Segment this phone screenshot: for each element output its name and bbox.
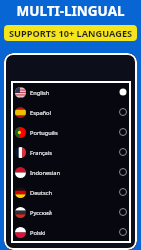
button[interactable]: Indonesian: [11, 162, 131, 182]
staticText: English: [30, 89, 50, 97]
staticText: Deutsch: [30, 189, 52, 197]
staticText: MULTI-LINGUAL: [0, 2, 141, 20]
staticText: Русский: [30, 209, 52, 217]
button[interactable]: Русский: [11, 202, 131, 222]
button[interactable]: Polski: [11, 222, 131, 242]
staticText: Indonesian: [30, 169, 61, 177]
button[interactable]: English: [11, 82, 131, 102]
staticText: Español: [30, 109, 51, 117]
staticText: SUPPORTS 10+ LANGUAGES: [9, 27, 133, 40]
staticText: Français: [30, 149, 53, 157]
button[interactable]: Español: [11, 102, 131, 122]
staticText: Polski: [30, 229, 46, 237]
button[interactable]: Français: [11, 142, 131, 162]
button[interactable]: SUPPORTS 10+ LANGUAGES: [4, 25, 137, 41]
button[interactable]: Deutsch: [11, 182, 131, 202]
staticText: Português: [30, 129, 58, 137]
button[interactable]: Português: [11, 122, 131, 142]
